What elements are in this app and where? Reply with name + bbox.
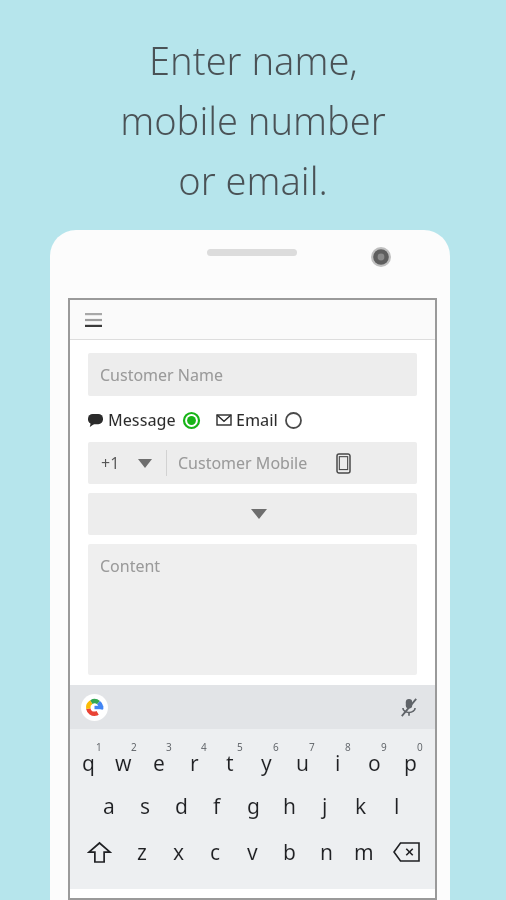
staticText: n (320, 838, 333, 867)
staticText: g (247, 792, 260, 821)
button[interactable]: Content (88, 544, 417, 675)
staticText: y (261, 749, 272, 778)
button[interactable]: o (359, 735, 395, 783)
staticText: c (210, 838, 221, 867)
staticText: 8 (345, 740, 351, 754)
staticText: Content (100, 555, 161, 577)
button[interactable]: z (123, 829, 160, 875)
button[interactable]: Customer Name (88, 353, 417, 396)
staticText: 9 (381, 740, 387, 754)
button[interactable]: Voice input muted (395, 693, 423, 721)
button[interactable]: r (179, 735, 215, 783)
staticText: w (115, 749, 132, 778)
button[interactable]: +1 (88, 442, 417, 484)
staticText: o (368, 749, 381, 778)
button[interactable]: Choose a Saved Message (88, 493, 417, 535)
staticText: 1 (96, 740, 102, 754)
staticText: p (404, 749, 417, 778)
staticText: k (355, 792, 367, 821)
button[interactable]: d (163, 783, 199, 829)
button[interactable]: Menu (78, 305, 108, 335)
button[interactable]: f (199, 783, 235, 829)
button[interactable]: s (127, 783, 163, 829)
staticText: Enter name, (149, 34, 358, 86)
button[interactable]: i (323, 735, 359, 783)
staticText: Customer Name (100, 364, 223, 386)
staticText: h (283, 792, 296, 821)
staticText: 5 (237, 740, 243, 754)
staticText: m (354, 838, 374, 867)
staticText: q (82, 749, 95, 778)
staticText: Message (108, 409, 176, 431)
staticText: or email. (178, 154, 328, 206)
staticText: d (175, 792, 188, 821)
button[interactable]: u (287, 735, 323, 783)
staticText: x (173, 838, 185, 867)
staticText: b (283, 838, 296, 867)
staticText: r (190, 749, 199, 778)
button[interactable]: k (343, 783, 379, 829)
staticText: s (140, 792, 151, 821)
button[interactable]: v (234, 829, 271, 875)
button[interactable]: m (345, 829, 382, 875)
staticText: e (153, 749, 165, 778)
staticText: l (394, 792, 400, 821)
button[interactable]: c (197, 829, 234, 875)
button[interactable]: Backspace (382, 829, 430, 875)
staticText: mobile number (120, 94, 386, 146)
button[interactable]: e (144, 735, 179, 783)
staticText: f (213, 792, 221, 821)
button[interactable]: p (395, 735, 431, 783)
button[interactable]: t (215, 735, 251, 783)
button[interactable]: j (307, 783, 343, 829)
staticText: 4 (201, 740, 207, 754)
staticText: j (322, 792, 328, 821)
button[interactable]: Message (88, 407, 200, 433)
button[interactable]: y (251, 735, 287, 783)
staticText: +1 (101, 452, 120, 474)
staticText: a (103, 792, 115, 821)
button[interactable]: b (271, 829, 308, 875)
button[interactable]: n (308, 829, 345, 875)
staticText: 7 (309, 740, 315, 754)
button[interactable]: Google (81, 694, 108, 721)
staticText: t (226, 749, 234, 778)
button[interactable]: g (235, 783, 271, 829)
staticText: i (335, 749, 341, 778)
button[interactable]: w (109, 735, 144, 783)
staticText: Email (236, 409, 278, 431)
staticText: Customer Mobile Numb (178, 452, 335, 474)
staticText: 0 (417, 740, 423, 754)
button[interactable]: l (379, 783, 415, 829)
staticText: u (296, 749, 309, 778)
button[interactable]: Shift (75, 829, 123, 875)
button[interactable]: x (160, 829, 197, 875)
button[interactable]: h (271, 783, 307, 829)
button[interactable]: a (90, 783, 127, 829)
staticText: 2 (131, 740, 137, 754)
staticText: 6 (273, 740, 279, 754)
staticText: 3 (166, 740, 172, 754)
staticText: v (247, 838, 258, 867)
staticText: z (137, 838, 147, 867)
button[interactable]: q (74, 735, 109, 783)
button[interactable]: Email (217, 407, 302, 433)
